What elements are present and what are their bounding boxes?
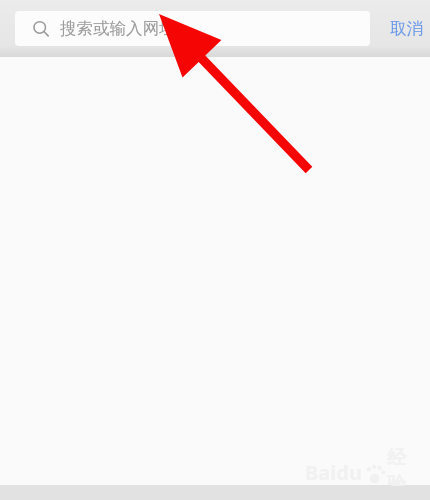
staticText: 搜索或输入网址 <box>60 18 176 39</box>
button[interactable]: Search <box>15 11 370 46</box>
staticText: Baidu <box>305 459 362 486</box>
other: Search <box>33 21 49 37</box>
button[interactable]: 取消 <box>383 0 430 57</box>
staticText: 经验 <box>387 446 415 486</box>
staticText: 取消 <box>390 18 423 39</box>
